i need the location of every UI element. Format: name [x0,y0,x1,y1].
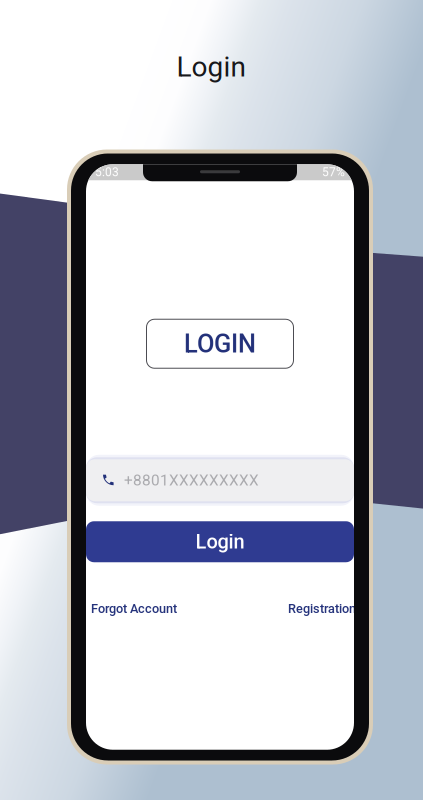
staticText: +8801XXXXXXXXX [124,471,259,489]
button[interactable]: Forgot Account [91,601,177,616]
staticText: Registration [288,601,356,616]
staticText: Login [195,530,244,553]
staticText: 57% [322,165,345,179]
button[interactable]: LOGIN [146,319,293,368]
button[interactable]: Login [86,521,354,562]
button[interactable]: Registration [288,601,356,616]
staticText: Forgot Account [91,601,177,616]
staticText: LOGIN [184,329,256,359]
staticText: 5:03 [95,165,119,179]
staticText: Login [176,51,245,83]
